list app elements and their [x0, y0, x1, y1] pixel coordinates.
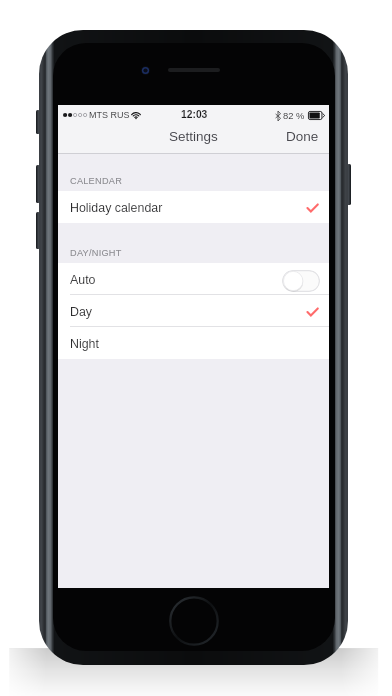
- button[interactable]: Holiday calendar: [58, 191, 329, 223]
- staticText: Auto: [70, 273, 96, 287]
- staticText: Done: [286, 129, 319, 144]
- button[interactable]: Auto: [58, 263, 329, 295]
- button[interactable]: Auto toggle: [282, 270, 320, 292]
- button[interactable]: Day: [58, 295, 329, 327]
- staticText: CALENDAR: [70, 176, 123, 186]
- staticText: 82 %: [283, 110, 305, 121]
- staticText: Settings: [169, 129, 218, 144]
- staticText: Day: [70, 305, 93, 319]
- staticText: Holiday calendar: [70, 201, 163, 215]
- button[interactable]: Done: [286, 129, 319, 144]
- staticText: MTS RUS: [89, 110, 130, 120]
- staticText: 12:03: [181, 109, 208, 121]
- staticText: Night: [70, 337, 99, 351]
- button[interactable]: Night: [58, 327, 329, 359]
- staticText: DAY/NIGHT: [70, 248, 122, 258]
